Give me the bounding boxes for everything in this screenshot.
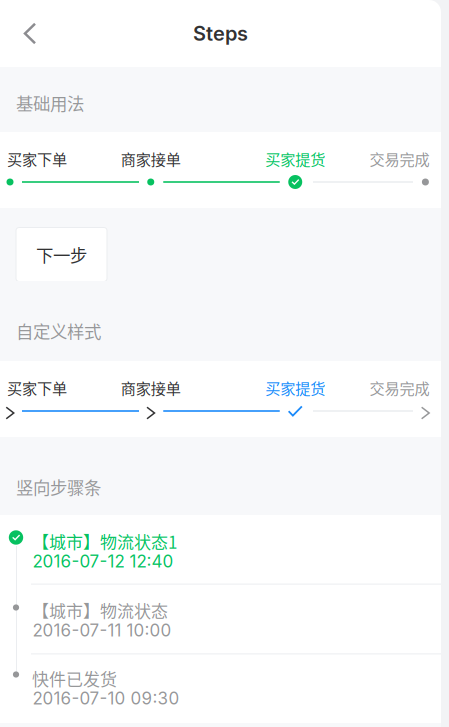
button[interactable]: 快件已发货 <box>31 666 441 712</box>
staticText: 买家提货 <box>265 147 325 169</box>
staticText: 商家接单 <box>121 376 181 398</box>
staticText: 交易完成 <box>369 376 429 398</box>
staticText: 2016-07-10 09:30 <box>32 688 179 709</box>
staticText: 【城市】物流状态1 <box>32 529 177 554</box>
staticText: 买家下单 <box>7 147 67 169</box>
staticText: Steps <box>193 21 248 46</box>
staticText: 2016-07-11 10:00 <box>32 620 171 641</box>
button[interactable]: 【城市】物流状态 <box>31 598 441 644</box>
staticText: 【城市】物流状态 <box>32 598 168 623</box>
staticText: 2016-07-12 12:40 <box>32 551 173 572</box>
staticText: 买家下单 <box>7 376 67 398</box>
staticText: 下一步 <box>36 242 87 267</box>
staticText: 交易完成 <box>369 147 429 169</box>
staticText: 自定义样式 <box>16 318 101 343</box>
staticText: 买家提货 <box>265 376 325 398</box>
staticText: 商家接单 <box>121 147 181 169</box>
button[interactable]: Back <box>8 11 52 55</box>
staticText: 竖向步骤条 <box>16 474 101 499</box>
staticText: 基础用法 <box>16 90 84 115</box>
staticText: 快件已发货 <box>32 666 117 691</box>
button[interactable]: 【城市】物流状态1 <box>31 529 441 575</box>
button[interactable]: 下一步 <box>16 227 107 281</box>
